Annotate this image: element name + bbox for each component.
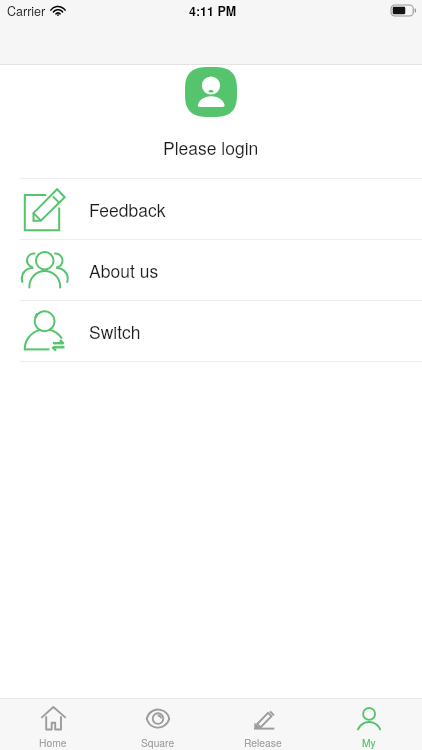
button[interactable]: Home: [0, 699, 105, 750]
staticText: Feedback: [89, 197, 166, 222]
button[interactable]: My: [316, 699, 422, 750]
staticText: 4:11 PM: [189, 2, 237, 19]
staticText: About us: [89, 258, 159, 283]
button[interactable]: Feedback: [0, 179, 422, 239]
staticText: My: [362, 735, 376, 750]
button[interactable]: Square: [105, 699, 210, 750]
button[interactable]: About us: [0, 240, 422, 300]
button[interactable]: Release: [210, 699, 316, 750]
staticText: Switch: [89, 319, 141, 344]
staticText: Home: [39, 735, 67, 750]
staticText: Release: [244, 735, 282, 750]
button[interactable]: Switch: [0, 301, 422, 361]
staticText: Carrier: [7, 2, 46, 19]
staticText: Please login: [163, 135, 259, 159]
staticText: Square: [141, 735, 175, 750]
